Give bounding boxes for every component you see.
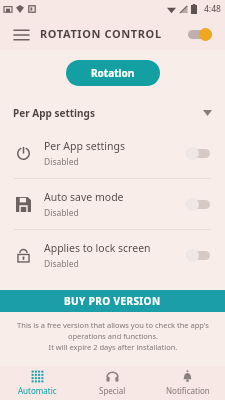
staticText: Applies to lock screen (44, 241, 151, 255)
staticText: Disabled (44, 258, 79, 270)
staticText: Per App settings (44, 139, 125, 153)
staticText: Notification (166, 385, 210, 396)
button[interactable]: Special (75, 366, 150, 400)
staticText: Per App settings (13, 106, 95, 120)
staticText: 4:48 (204, 3, 221, 15)
button[interactable]: Applies to lock screen (0, 230, 225, 280)
staticText: Auto save mode (44, 190, 124, 204)
button[interactable]: Open navigation menu (8, 21, 34, 47)
button[interactable]: Per App settings (0, 100, 225, 126)
button[interactable]: Per App settings (0, 128, 225, 178)
staticText: Disabled (44, 207, 79, 219)
staticText: Disabled (44, 156, 79, 168)
staticText: Rotation (91, 66, 135, 80)
staticText: This is a free version that allows you t… (17, 320, 209, 352)
button[interactable]: Auto save mode (0, 179, 225, 229)
button[interactable]: Automatic (0, 366, 75, 400)
staticText: BUY PRO VERSION (64, 294, 161, 308)
staticText: Special (99, 385, 126, 396)
button[interactable]: Rotation (66, 60, 160, 86)
button[interactable]: Notification (150, 366, 225, 400)
staticText: ROTATION CONTROL (40, 26, 162, 41)
button[interactable]: BUY PRO VERSION (0, 290, 225, 312)
staticText: Automatic (18, 385, 57, 396)
button[interactable]: Toggle rotation control (183, 21, 217, 47)
